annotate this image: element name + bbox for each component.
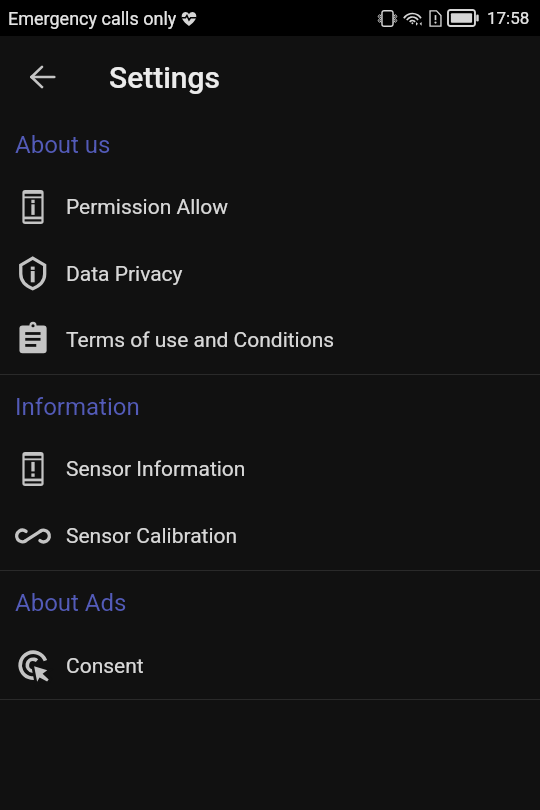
staticText: Information: [15, 393, 140, 421]
staticText: About us: [15, 131, 111, 159]
staticText: Permission Allow: [66, 195, 229, 220]
staticText: Sensor Information: [66, 457, 246, 482]
button[interactable]: Consent: [0, 633, 540, 699]
button[interactable]: Data Privacy: [0, 241, 540, 307]
staticText: 17:58: [487, 8, 530, 28]
staticText: About Ads: [15, 589, 127, 617]
staticText: Consent: [66, 654, 144, 679]
staticText: Settings: [109, 60, 221, 95]
button[interactable]: Sensor Calibration: [0, 503, 540, 569]
staticText: Data Privacy: [66, 262, 183, 287]
button[interactable]: Permission Allow: [0, 174, 540, 240]
button[interactable]: Sensor Information: [0, 436, 540, 502]
staticText: Emergency calls only: [8, 8, 177, 29]
button[interactable]: Back: [18, 53, 66, 101]
staticText: Terms of use and Conditions: [66, 328, 335, 353]
button[interactable]: Terms of use and Conditions: [0, 307, 540, 373]
staticText: Sensor Calibration: [66, 524, 238, 549]
